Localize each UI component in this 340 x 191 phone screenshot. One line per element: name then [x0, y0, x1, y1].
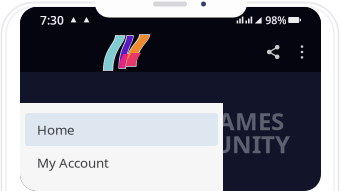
staticText: GAMES — [201, 105, 284, 137]
button[interactable]: Home — [25, 113, 218, 146]
staticText: 98% — [265, 13, 286, 27]
staticText: COMMUNITY — [134, 128, 290, 160]
staticText: My Account — [37, 154, 109, 171]
button[interactable]: More options — [295, 43, 309, 61]
button[interactable]: My Account — [25, 146, 218, 179]
staticText: 7:30 — [40, 12, 64, 28]
staticText: Home — [37, 121, 75, 138]
button[interactable]: Share — [264, 43, 282, 61]
